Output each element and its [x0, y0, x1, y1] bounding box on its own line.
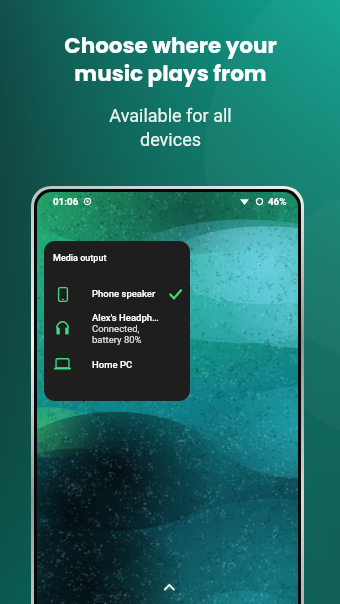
- staticText: Media output: [53, 253, 107, 264]
- button[interactable]: Phone speaker: [44, 282, 190, 306]
- other: Selected: [169, 288, 182, 301]
- button[interactable]: Home PC: [44, 352, 190, 376]
- other: Wi-Fi: [240, 198, 249, 205]
- staticText: Connected, battery 80%: [92, 323, 142, 345]
- button[interactable]: Alex's Headph…: [44, 312, 190, 348]
- staticText: Home PC: [92, 359, 133, 370]
- staticText: 46%: [268, 196, 287, 207]
- staticText: Choose where your music plays from: [64, 30, 277, 89]
- other: Battery saver: [256, 198, 263, 205]
- staticText: Phone speaker: [92, 288, 156, 299]
- staticText: Available for all devices: [109, 105, 232, 151]
- staticText: 01:06: [53, 196, 79, 207]
- staticText: Alex's Headph…: [92, 312, 159, 323]
- other: Location: [84, 198, 91, 205]
